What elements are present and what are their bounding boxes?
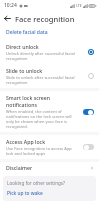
- button[interactable]: Smart lock screen notifications: [0, 91, 99, 132]
- staticText: Looking for other settings?: [7, 180, 66, 186]
- staticText: Slide to unlock after successful facial …: [6, 75, 85, 85]
- staticText: Unlock directly after successful facial …: [6, 51, 85, 61]
- button[interactable]: Slide to unlock: [0, 64, 99, 88]
- staticText: Use Face recognition to access App lock …: [6, 146, 80, 156]
- staticText: Disclaimer: [6, 164, 90, 171]
- staticText: Smart lock screen notifications: [6, 94, 80, 108]
- staticText: Direct unlock: [6, 43, 39, 50]
- staticText: Face recognition: [15, 14, 75, 24]
- other: On: [83, 109, 94, 115]
- staticText: Pick up to wake: [7, 190, 43, 197]
- staticText: 10:24: [4, 2, 17, 9]
- staticText: LTE: [76, 3, 82, 8]
- button[interactable]: Delete facial data: [0, 28, 99, 37]
- button[interactable]: Pick up to wake: [7, 190, 43, 197]
- button[interactable]: Direct unlock: [0, 40, 99, 64]
- staticText: Delete facial data: [6, 29, 48, 36]
- button[interactable]: Back: [0, 11, 15, 26]
- button[interactable]: Access App lock: [0, 135, 99, 159]
- staticText: When enabled, the content of notificatio…: [6, 109, 80, 129]
- staticText: Slide to unlock: [6, 67, 43, 74]
- other: Off: [83, 144, 94, 150]
- staticText: Access App lock: [6, 138, 46, 145]
- button[interactable]: Disclaimer: [0, 162, 99, 173]
